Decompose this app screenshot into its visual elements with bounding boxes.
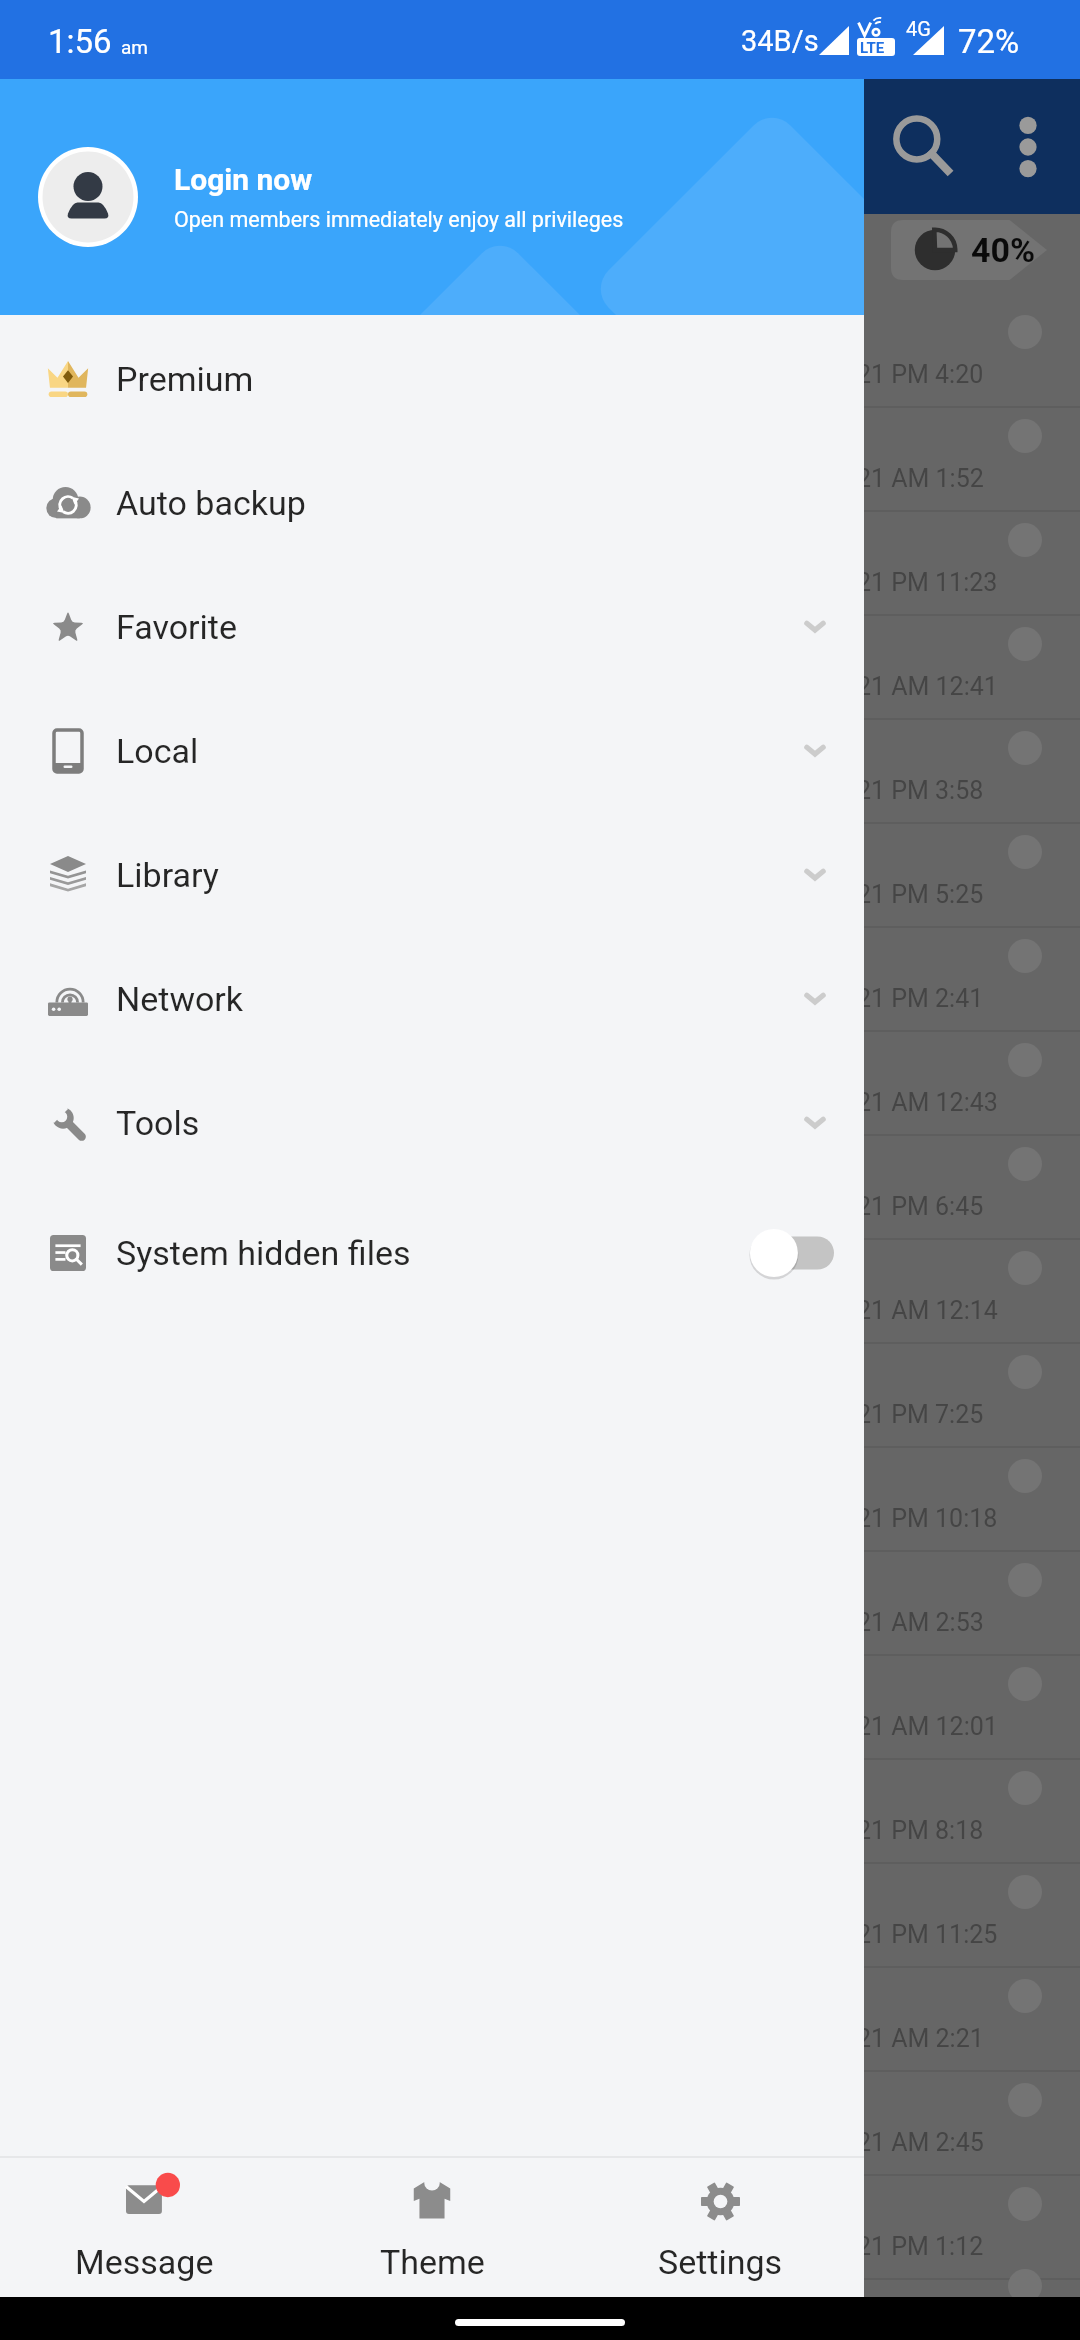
staticText: 2021/10/21 PM 1:12 xyxy=(752,2232,984,2261)
button[interactable]: 2021/10/21 AM 3:33 xyxy=(0,2280,1080,2340)
button[interactable]: Tools xyxy=(0,1061,864,1185)
staticText: 2021/10/21 AM 2:21 xyxy=(752,2024,984,2053)
staticText: Network xyxy=(116,979,244,1019)
button[interactable]: 2021/10/21 AM 12:43 xyxy=(0,1032,1080,1136)
staticText: 2021/10/21 PM 11:23 xyxy=(752,568,998,597)
staticText: 2021/10/21 PM 8:18 xyxy=(752,1816,984,1845)
staticText: am xyxy=(121,36,148,58)
staticText: LTE xyxy=(860,39,885,57)
button[interactable]: 2021/10/21 PM 6:45 xyxy=(0,1136,1080,1240)
button[interactable]: More options xyxy=(980,99,1076,195)
button[interactable]: 2021/10/21 PM 7:25 xyxy=(0,1344,1080,1448)
staticText: 2021/10/21 PM 5:25 xyxy=(752,880,984,909)
button[interactable]: Theme xyxy=(288,2156,576,2297)
button[interactable]: Message xyxy=(0,2156,288,2297)
button[interactable]: Login now xyxy=(0,79,864,315)
button[interactable]: 2021/10/21 PM 10:18 xyxy=(0,1448,1080,1552)
staticText: 2021/10/21 PM 2:41 xyxy=(752,984,984,1013)
button[interactable]: System hidden files xyxy=(0,1185,864,1320)
staticText: 2021/10/21 AM 12:14 xyxy=(752,1296,998,1325)
staticText: 72% xyxy=(958,22,1020,61)
staticText: Favorite xyxy=(116,607,238,647)
button[interactable]: 2021/10/21 PM 2:41 xyxy=(0,928,1080,1032)
button[interactable]: Settings xyxy=(576,2156,864,2297)
staticText: Settings xyxy=(658,2242,783,2282)
staticText: 2021/10/21 AM 12:43 xyxy=(752,1088,998,1117)
staticText: 2021/10/21 AM 12:01 xyxy=(752,1712,998,1741)
button[interactable]: 2021/10/21 PM 3:58 xyxy=(0,720,1080,824)
button[interactable]: Favorite xyxy=(0,565,864,689)
button[interactable]: Network xyxy=(0,937,864,1061)
button[interactable]: 2021/10/21 PM 11:25 xyxy=(0,1864,1080,1968)
button[interactable]: Expand xyxy=(796,850,834,900)
staticText: System hidden files xyxy=(116,1233,411,1273)
button[interactable]: Expand xyxy=(796,1098,834,1148)
button[interactable]: 2021/10/21 AM 1:52 xyxy=(0,408,1080,512)
staticText: Local xyxy=(116,731,199,771)
button[interactable]: Show system hidden files xyxy=(750,1228,834,1278)
staticText: Open members immediately enjoy all privi… xyxy=(174,207,624,232)
staticText: 2021/10/21 PM 6:45 xyxy=(752,1192,984,1221)
button[interactable]: 2021/10/21 AM 12:01 xyxy=(0,1656,1080,1760)
staticText: 1:56 xyxy=(48,22,112,61)
staticText: 2021/10/21 AM 1:52 xyxy=(752,464,984,493)
staticText: 2021/10/21 PM 11:25 xyxy=(752,1920,998,1949)
button[interactable]: 40% xyxy=(891,220,1047,280)
staticText: Theme xyxy=(380,2242,485,2282)
staticText: 2021/10/21 AM 2:45 xyxy=(752,2128,984,2157)
button[interactable]: 2021/10/21 AM 12:14 xyxy=(0,1240,1080,1344)
staticText: Tools xyxy=(116,1103,200,1143)
staticText: Auto backup xyxy=(116,483,306,523)
button[interactable]: 2021/10/21 PM 1:12 xyxy=(0,2176,1080,2280)
button[interactable]: Expand xyxy=(796,974,834,1024)
button[interactable]: 2021/10/21 AM 12:41 xyxy=(0,616,1080,720)
button[interactable]: Local xyxy=(0,689,864,813)
staticText: 34B/s xyxy=(741,24,819,58)
button[interactable]: Expand xyxy=(796,602,834,652)
staticText: 40% xyxy=(971,230,1036,270)
button[interactable]: Auto backup xyxy=(0,441,864,565)
button[interactable]: 2021/10/21 AM 2:45 xyxy=(0,2072,1080,2176)
staticText: 2021/10/21 PM 3:58 xyxy=(752,776,984,805)
button[interactable]: 2021/10/21 PM 8:18 xyxy=(0,1760,1080,1864)
staticText: Library xyxy=(116,855,219,895)
staticText: 2021/10/21 PM 7:25 xyxy=(752,1400,984,1429)
button[interactable]: 2021/10/21 AM 2:21 xyxy=(0,1968,1080,2072)
button[interactable]: 2021/10/21 PM 11:23 xyxy=(0,512,1080,616)
staticText: Message xyxy=(75,2242,214,2282)
button[interactable]: 2021/10/21 AM 2:53 xyxy=(0,1552,1080,1656)
button[interactable]: 2021/10/21 PM 4:20 xyxy=(0,304,1080,408)
staticText: 2021/10/21 AM 12:41 xyxy=(752,672,998,701)
button[interactable]: Library xyxy=(0,813,864,937)
button[interactable]: Search xyxy=(875,99,971,195)
button[interactable]: Expand xyxy=(796,726,834,776)
staticText: 2021/10/21 PM 4:20 xyxy=(752,360,984,389)
staticText: 2021/10/21 AM 2:53 xyxy=(752,1608,984,1637)
button[interactable]: 2021/10/21 PM 5:25 xyxy=(0,824,1080,928)
staticText: 4G xyxy=(906,17,931,40)
staticText: Premium xyxy=(116,359,254,399)
staticText: 2021/10/21 PM 10:18 xyxy=(752,1504,998,1533)
button[interactable]: Premium xyxy=(0,317,864,441)
staticText: Login now xyxy=(174,162,313,197)
